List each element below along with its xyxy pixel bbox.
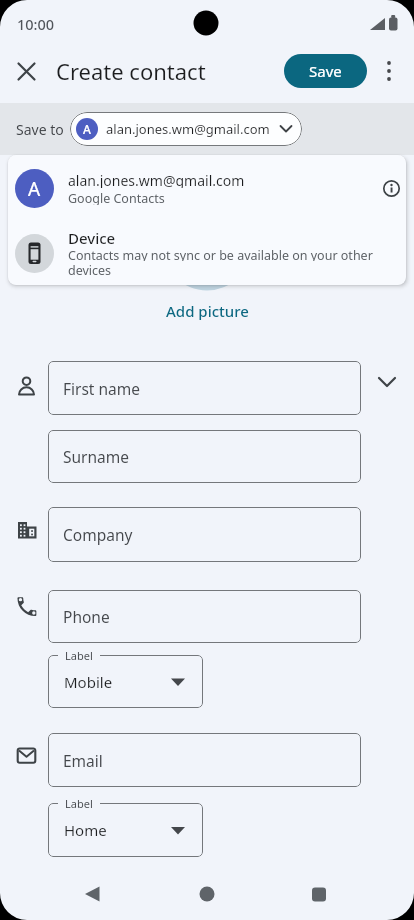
staticText: Company — [63, 524, 133, 545]
button[interactable] — [371, 366, 403, 398]
staticText: Label — [65, 796, 93, 810]
staticText: devices — [68, 262, 112, 276]
button[interactable]: Add picture — [0, 300, 414, 322]
button[interactable]: Email — [48, 733, 361, 787]
button[interactable] — [8, 218, 406, 285]
staticText: 10:00 — [17, 14, 55, 34]
button[interactable] — [8, 155, 406, 218]
button[interactable] — [8, 53, 44, 89]
button[interactable]: Mobile — [48, 655, 203, 708]
staticText: Label — [65, 648, 93, 662]
button[interactable] — [295, 870, 343, 918]
staticText: Device — [68, 228, 116, 245]
staticText: Home — [64, 820, 107, 840]
staticText: alan.jones.wm@gmail.com — [106, 120, 270, 138]
staticText: alan.jones.wm@gmail.com — [68, 171, 245, 188]
button[interactable]: Phone — [48, 590, 361, 643]
staticText: Mobile — [64, 672, 113, 692]
button[interactable] — [183, 870, 231, 918]
staticText: Create contact — [56, 56, 206, 86]
staticText: Save — [309, 61, 342, 81]
button[interactable] — [376, 173, 406, 204]
button[interactable] — [378, 56, 400, 86]
staticText: Contacts may not sync or be available on… — [68, 247, 373, 261]
button[interactable]: First name — [48, 361, 361, 415]
button[interactable]: Company — [48, 507, 361, 562]
button[interactable]: Surname — [48, 430, 361, 483]
button[interactable]: Home — [48, 803, 203, 857]
staticText: Save to — [16, 120, 64, 139]
button[interactable] — [68, 870, 116, 918]
staticText: Email — [63, 750, 103, 771]
staticText: Phone — [63, 606, 110, 627]
staticText: Add picture — [166, 301, 249, 321]
button[interactable]: A — [70, 112, 302, 146]
staticText: Surname — [63, 446, 129, 467]
staticText: First name — [63, 378, 141, 399]
button[interactable]: Save — [284, 54, 367, 88]
staticText: A — [28, 176, 41, 202]
staticText: Google Contacts — [68, 190, 165, 205]
staticText: A — [83, 121, 91, 137]
